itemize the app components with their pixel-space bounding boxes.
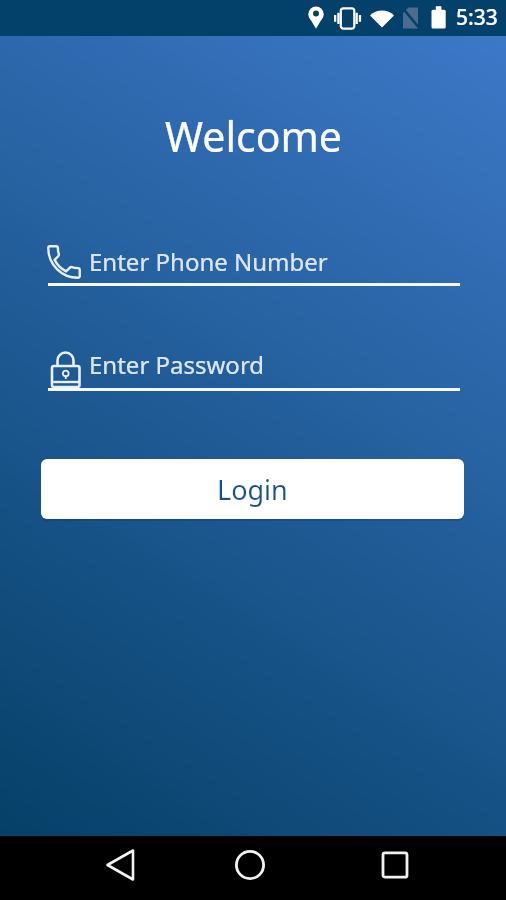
button[interactable]: Login [41, 459, 464, 519]
staticText: Welcome [165, 108, 342, 164]
button[interactable] [228, 843, 272, 887]
staticText: 5:33 [456, 3, 498, 32]
staticText: Enter Password [89, 348, 265, 381]
staticText: Login [217, 471, 288, 508]
staticText: Enter Phone Number [89, 245, 328, 278]
button[interactable]: Enter Phone Number [43, 240, 460, 286]
button[interactable] [373, 843, 417, 887]
button[interactable] [100, 840, 142, 882]
button[interactable]: Enter Password [43, 345, 460, 391]
